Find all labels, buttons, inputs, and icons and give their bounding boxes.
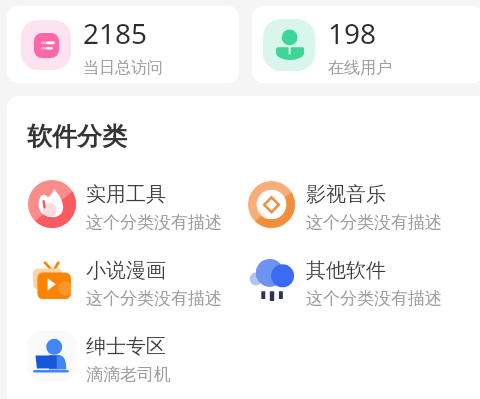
button[interactable]: 小说漫画 bbox=[0, 242, 220, 318]
staticText: 198 bbox=[328, 14, 377, 52]
staticText: 滴滴老司机 bbox=[86, 364, 171, 385]
staticText: 2185 bbox=[83, 14, 148, 52]
button[interactable]: 其他软件 bbox=[220, 242, 440, 318]
staticText: 其他软件 bbox=[306, 258, 386, 283]
button[interactable]: 影视音乐 bbox=[220, 166, 440, 242]
staticText: 当日总访问 bbox=[83, 58, 163, 78]
button[interactable]: 实用工具 bbox=[0, 166, 220, 242]
staticText: 小说漫画 bbox=[86, 258, 166, 283]
staticText: 这个分类没有描述 bbox=[306, 288, 442, 309]
button[interactable]: 198 bbox=[252, 6, 480, 83]
staticText: 这个分类没有描述 bbox=[86, 288, 222, 309]
staticText: 软件分类 bbox=[27, 121, 127, 152]
staticText: 这个分类没有描述 bbox=[86, 212, 222, 233]
staticText: 绅士专区 bbox=[86, 334, 166, 359]
button[interactable]: 绅士专区 bbox=[0, 318, 220, 394]
button[interactable]: 2185 bbox=[7, 6, 239, 83]
staticText: 实用工具 bbox=[86, 182, 166, 207]
staticText: 在线用户 bbox=[328, 58, 392, 78]
staticText: 这个分类没有描述 bbox=[306, 212, 442, 233]
staticText: 影视音乐 bbox=[306, 182, 386, 207]
